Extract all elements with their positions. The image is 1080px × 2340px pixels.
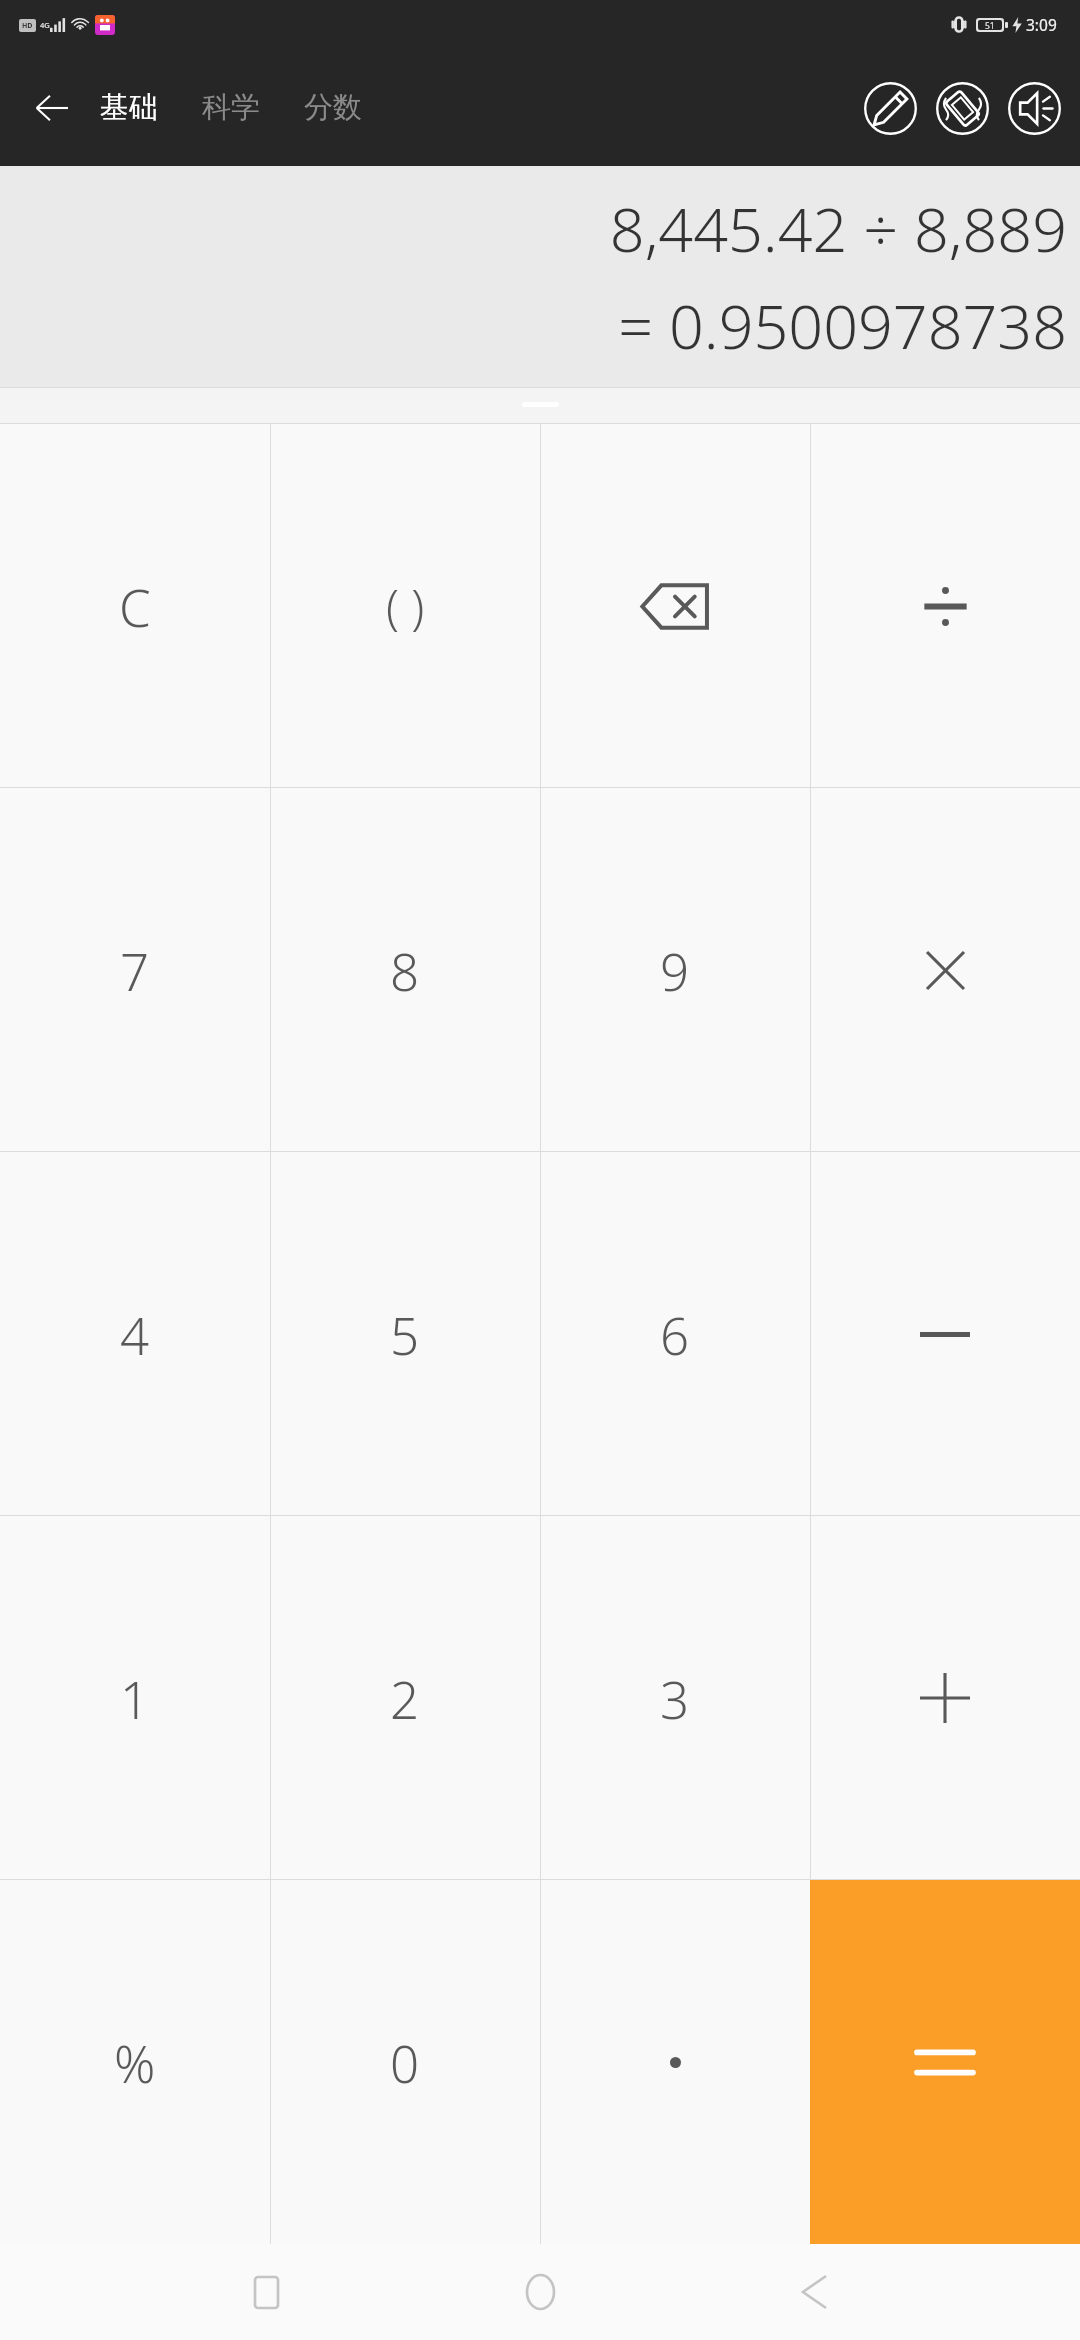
- staticText: 4: [120, 1300, 150, 1369]
- staticText: 0: [390, 2028, 420, 2097]
- button[interactable]: 0: [270, 1880, 540, 2244]
- button[interactable]: Home: [502, 2254, 578, 2330]
- button[interactable]: Shake: [926, 72, 998, 144]
- button[interactable]: 分数: [298, 83, 368, 132]
- staticText: 5: [390, 1300, 420, 1369]
- button[interactable]: 科学: [196, 83, 266, 132]
- button[interactable]: 7: [0, 788, 270, 1152]
- staticText: HD: [22, 21, 33, 31]
- button[interactable]: 1: [0, 1516, 270, 1880]
- button[interactable]: [810, 1152, 1080, 1516]
- button[interactable]: [540, 1880, 810, 2244]
- button[interactable]: 8: [270, 788, 540, 1152]
- staticText: 6: [660, 1300, 690, 1369]
- staticText: 科学: [202, 89, 260, 126]
- button[interactable]: Recents: [228, 2254, 304, 2330]
- button[interactable]: ( ): [270, 424, 540, 788]
- staticText: C: [119, 572, 151, 641]
- staticText: 1: [120, 1664, 150, 1733]
- button[interactable]: Equals: [810, 1880, 1080, 2244]
- button[interactable]: %: [0, 1880, 270, 2244]
- button[interactable]: Back: [776, 2254, 852, 2330]
- staticText: 基础: [100, 89, 158, 126]
- button[interactable]: Edit: [854, 72, 926, 144]
- button[interactable]: 5: [270, 1152, 540, 1516]
- staticText: 3:09: [1026, 14, 1057, 35]
- staticText: 3: [660, 1664, 690, 1733]
- button[interactable]: 6: [540, 1152, 810, 1516]
- staticText: 9: [660, 936, 690, 1005]
- staticText: 4G: [40, 20, 50, 30]
- button[interactable]: 2: [270, 1516, 540, 1880]
- staticText: 分数: [304, 89, 362, 126]
- button[interactable]: Backspace: [540, 424, 810, 788]
- staticText: ( ): [386, 574, 425, 638]
- staticText: 2: [390, 1664, 420, 1733]
- button[interactable]: Back: [20, 76, 84, 140]
- staticText: 8: [390, 936, 420, 1005]
- button[interactable]: [810, 788, 1080, 1152]
- button[interactable]: C: [0, 424, 270, 788]
- staticText: 7: [120, 936, 150, 1005]
- button[interactable]: [810, 424, 1080, 788]
- staticText: %: [114, 2028, 156, 2097]
- button[interactable]: 4: [0, 1152, 270, 1516]
- button[interactable]: Sound: [998, 72, 1070, 144]
- staticText: = 0.9500978738: [13, 284, 1067, 367]
- staticText: 51: [985, 20, 995, 30]
- button[interactable]: 9: [540, 788, 810, 1152]
- button[interactable]: [810, 1516, 1080, 1880]
- button[interactable]: 3: [540, 1516, 810, 1880]
- staticText: 8,445.42 ÷ 8,889: [13, 187, 1067, 270]
- button[interactable]: 基础: [94, 83, 164, 132]
